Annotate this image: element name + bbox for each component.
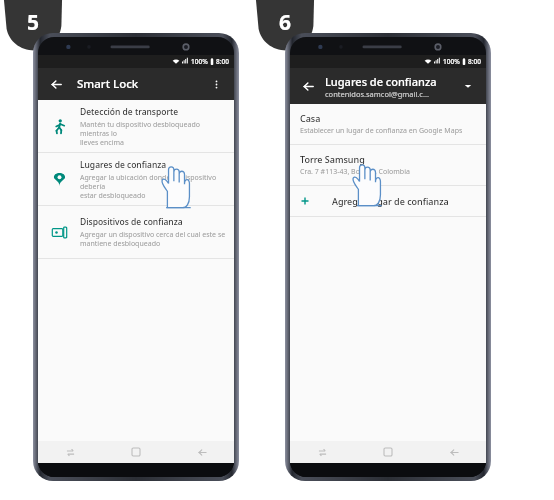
button[interactable]: Detección de transporte — [38, 100, 234, 152]
staticText: contenidos.samcol@gmail.c... — [325, 89, 430, 99]
button[interactable]: Recent apps — [60, 442, 80, 462]
staticText: Agregar lugar de confianza — [332, 195, 449, 207]
staticText: Detección de transporte — [80, 106, 179, 118]
button[interactable]: Expand account — [459, 77, 477, 95]
staticText: Dispositivos de confianza — [80, 216, 183, 228]
button[interactable]: Torre Samsung — [290, 145, 486, 185]
staticText: Lugares de confianza — [325, 74, 437, 89]
staticText: Casa — [300, 112, 321, 124]
staticText: 5 — [27, 8, 40, 37]
button[interactable]: Home — [126, 442, 146, 462]
staticText: Smart Lock — [77, 76, 139, 92]
staticText: 6 — [279, 8, 292, 37]
staticText: 100% — [191, 57, 208, 66]
staticText: Lugares de confianza — [80, 159, 167, 171]
staticText: Agregar la ubicación donde tu dispositiv… — [80, 173, 226, 200]
button[interactable]: Dispositivos de confianza — [38, 206, 234, 258]
button[interactable]: Back — [444, 442, 464, 462]
staticText: Cra. 7 #113-43, Bogotá, Colombia — [300, 167, 410, 177]
staticText: 100% — [443, 57, 460, 66]
button[interactable]: Lugares de confianza — [38, 153, 234, 205]
staticText: 8:00 — [468, 57, 481, 66]
staticText: 8:00 — [216, 57, 229, 66]
staticText: Mantén tu dispositivo desbloqueado mient… — [80, 120, 226, 147]
staticText: Establecer un lugar de confianza en Goog… — [300, 126, 463, 136]
button[interactable]: Back — [299, 77, 317, 95]
button[interactable]: Agregar lugar de confianza — [290, 186, 486, 216]
button[interactable]: Home — [378, 442, 398, 462]
staticText: Torre Samsung — [300, 153, 365, 165]
staticText: Agregar un dispositivo cerca del cual es… — [80, 230, 226, 248]
button[interactable]: Recent apps — [312, 442, 332, 462]
button[interactable]: Casa — [290, 104, 486, 144]
button[interactable]: Back — [47, 75, 65, 93]
button[interactable]: Back — [192, 442, 212, 462]
button[interactable]: More options — [207, 75, 225, 93]
